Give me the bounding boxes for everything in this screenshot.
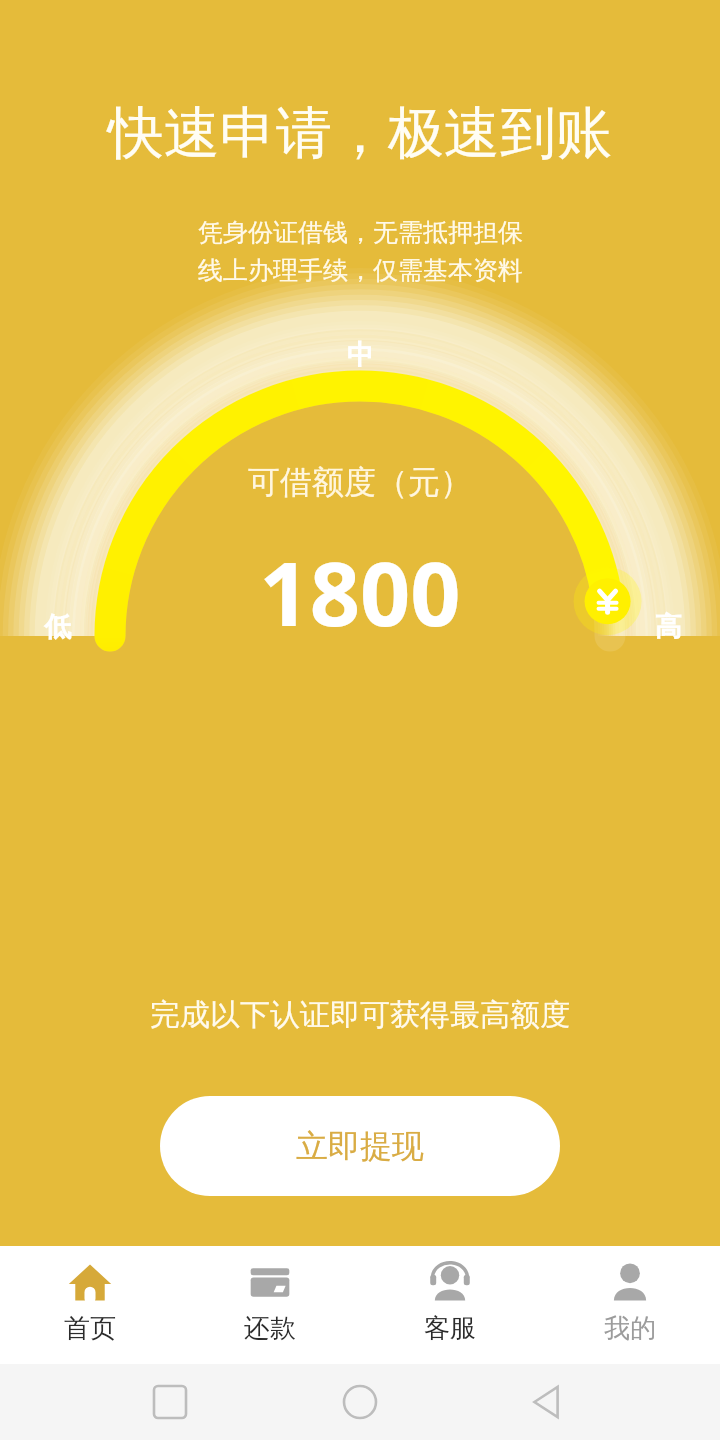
staticText: 中: [347, 338, 374, 372]
staticText: 还款: [244, 1312, 296, 1345]
staticText: 快速申请，极速到账: [108, 98, 612, 169]
button[interactable]: 首页: [0, 1246, 180, 1364]
other: 客服: [427, 1260, 473, 1306]
button[interactable]: 我的: [540, 1246, 720, 1364]
button[interactable]: 客服: [360, 1246, 540, 1364]
staticText: 立即提现: [296, 1126, 424, 1166]
staticText: 1800: [259, 532, 461, 652]
other: 首页: [67, 1260, 113, 1306]
staticText: 完成以下认证即可获得最高额度: [150, 996, 570, 1034]
staticText: 低: [44, 610, 71, 644]
staticText: 凭身份证借钱，无需抵押担保: [198, 217, 523, 248]
button[interactable]: 立即提现: [160, 1096, 560, 1196]
staticText: 我的: [604, 1312, 656, 1345]
staticText: 客服: [424, 1312, 476, 1345]
staticText: 线上办理手续，仅需基本资料: [198, 255, 523, 286]
staticText: 首页: [64, 1312, 116, 1345]
other: 还款: [247, 1260, 293, 1306]
staticText: 高: [655, 610, 682, 644]
other: 我的: [607, 1260, 653, 1306]
staticText: 可借额度（元）: [248, 462, 472, 502]
button[interactable]: 还款: [180, 1246, 360, 1364]
